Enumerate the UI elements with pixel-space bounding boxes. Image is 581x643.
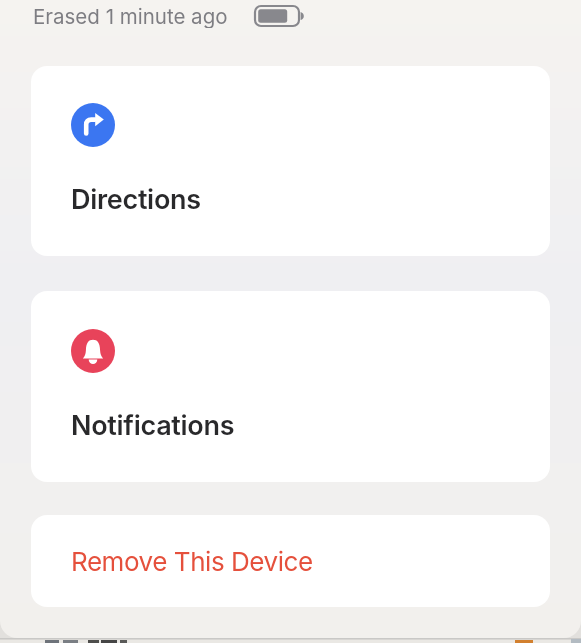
staticText: Remove This Device	[71, 546, 313, 577]
staticText: Notifications	[71, 409, 235, 442]
button[interactable]: Remove This Device	[31, 515, 550, 607]
button[interactable]: Notifications	[31, 291, 550, 482]
button[interactable]: Directions	[31, 66, 550, 256]
staticText: Directions	[71, 183, 201, 216]
staticText: Erased 1 minute ago	[33, 4, 228, 28]
